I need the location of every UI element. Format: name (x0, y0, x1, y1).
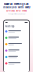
staticText: inside job with every (3, 6, 30, 9)
staticText: The AI layer for your calendar (8, 13, 25, 15)
button[interactable] (4, 28, 29, 35)
button[interactable] (4, 54, 29, 60)
staticText: Make all meetings an (4, 3, 29, 6)
staticText: Meetings (5, 25, 14, 28)
button[interactable] (4, 41, 29, 47)
button[interactable] (4, 35, 29, 41)
button[interactable] (4, 60, 29, 67)
staticText: contact you meet (6, 9, 27, 12)
button[interactable] (4, 47, 29, 54)
